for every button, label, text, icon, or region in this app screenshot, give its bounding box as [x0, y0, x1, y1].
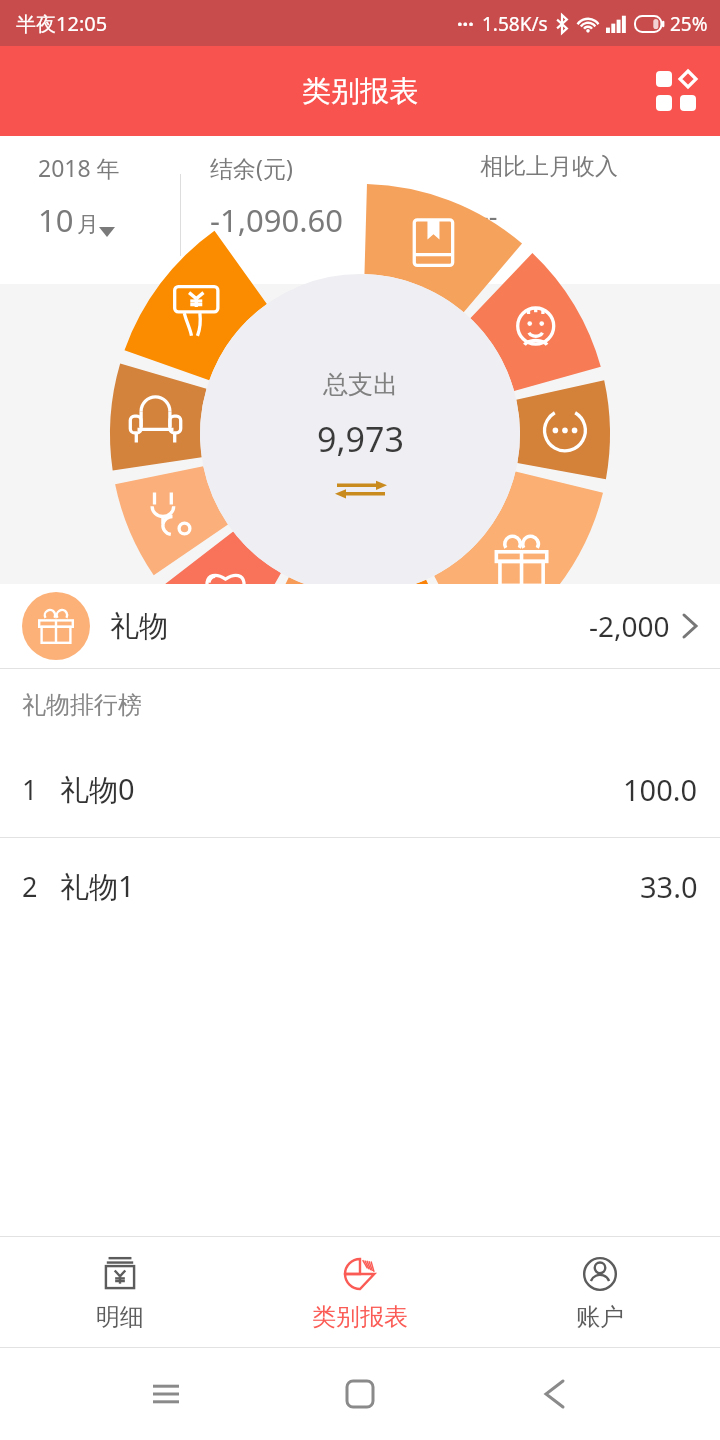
button[interactable]: 返回 [526, 1366, 582, 1422]
staticText: 100.0 [623, 770, 698, 809]
staticText: 10 [38, 199, 74, 241]
button[interactable]: 2 [0, 838, 720, 934]
staticText: 礼物0 [60, 769, 135, 809]
staticText: 2018 年 [38, 152, 120, 183]
staticText: 礼物 [110, 608, 168, 645]
button[interactable]: 账户 [480, 1237, 720, 1347]
staticText: -1,090.60 [210, 199, 343, 241]
button[interactable]: 类别报表 [240, 1237, 480, 1347]
staticText: 结余(元) [210, 152, 293, 183]
button[interactable]: 2018 年 [38, 152, 120, 241]
button[interactable]: 菜单 [138, 1366, 194, 1422]
staticText: 礼物1 [60, 866, 135, 906]
staticText: 25% [670, 11, 708, 37]
staticText: 相比上月收入 [480, 152, 618, 181]
button[interactable]: 礼物 [0, 584, 720, 668]
staticText: 月 [77, 211, 99, 239]
staticText: 33.0 [640, 867, 698, 906]
button[interactable]: 切换视图 [646, 61, 706, 121]
button[interactable]: 1 [0, 741, 720, 837]
staticText: 类别报表 [302, 73, 418, 110]
staticText: 半夜12:05 [16, 10, 108, 37]
button[interactable] [0, 284, 720, 584]
staticText: 类别报表 [312, 1302, 408, 1332]
staticText: 2 [22, 868, 38, 905]
staticText: 总支出 [323, 369, 398, 400]
staticText: 礼物排行榜 [22, 690, 142, 720]
button[interactable]: 明细 [0, 1237, 240, 1347]
staticText: 1 [22, 771, 38, 808]
staticText: ··· [457, 10, 474, 37]
staticText: -- [480, 197, 498, 234]
staticText: 1.58K/s [482, 11, 548, 37]
staticText: 明细 [96, 1302, 144, 1332]
staticText: 账户 [576, 1302, 624, 1332]
staticText: 9,973 [317, 416, 404, 462]
staticText: -2,000 [589, 607, 670, 645]
button[interactable]: 主页 [332, 1366, 388, 1422]
